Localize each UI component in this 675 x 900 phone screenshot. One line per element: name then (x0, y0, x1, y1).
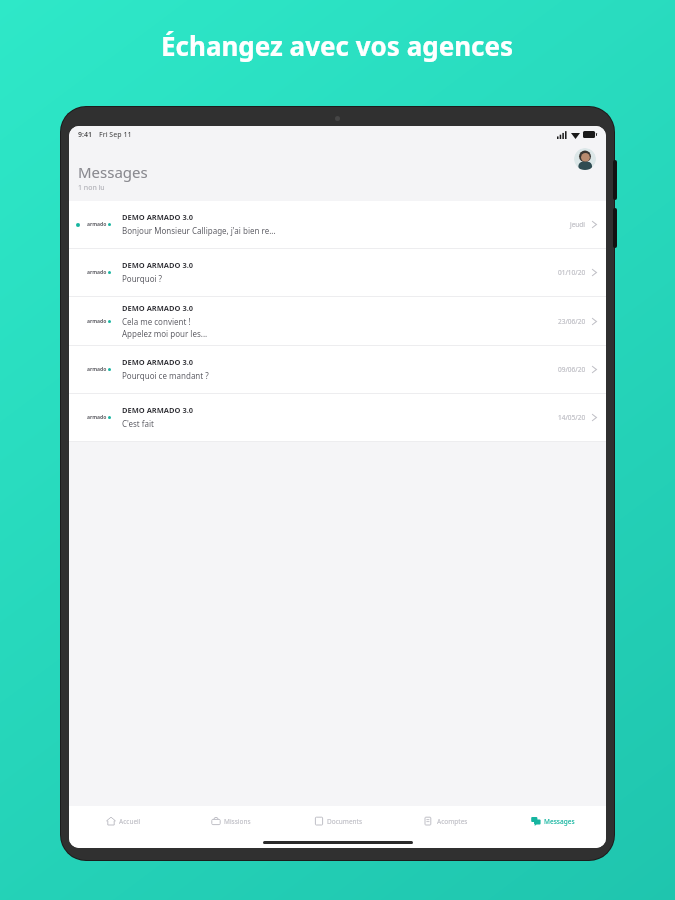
staticText: 01/10/20 (558, 268, 586, 277)
staticText: DEMO ARMADO 3.0 (122, 303, 194, 313)
staticText: Bonjour Monsieur Callipage, j'ai bien re… (122, 225, 276, 236)
staticText: Accueil (119, 817, 141, 826)
staticText: Cela me convient ! (122, 316, 191, 327)
staticText: C'est fait (122, 418, 154, 429)
staticText: 1 non lu (78, 183, 105, 193)
staticText: armado (87, 414, 107, 421)
staticText: Messages (78, 162, 148, 182)
staticText: Pourquoi ce mandant ? (122, 370, 209, 381)
button[interactable]: armado (69, 201, 606, 248)
staticText: Missions (224, 817, 251, 826)
button[interactable]: Profil (574, 148, 596, 170)
button[interactable]: armado (69, 346, 606, 393)
button[interactable]: Messages (499, 806, 606, 836)
button[interactable]: Accueil (69, 806, 177, 836)
staticText: DEMO ARMADO 3.0 (122, 260, 194, 270)
button[interactable]: Documents (285, 806, 392, 836)
button[interactable]: armado (69, 249, 606, 296)
staticText: armado (87, 269, 107, 276)
staticText: armado (87, 318, 107, 325)
button[interactable]: armado (69, 297, 606, 345)
staticText: armado (87, 366, 107, 373)
button[interactable]: armado (69, 394, 606, 441)
button[interactable]: Acomptes (392, 806, 499, 836)
staticText: 14/05/20 (558, 413, 586, 422)
staticText: Pourquoi ? (122, 273, 163, 284)
staticText: 9:41 (78, 130, 92, 140)
staticText: Appelez moi pour les... (122, 328, 208, 339)
staticText: 09/06/20 (558, 365, 586, 374)
staticText: jeudi (570, 220, 586, 229)
staticText: Messages (544, 817, 575, 826)
staticText: Échangez avec vos agences (161, 28, 514, 63)
button[interactable]: Missions (177, 806, 285, 836)
staticText: DEMO ARMADO 3.0 (122, 405, 194, 415)
staticText: armado (87, 221, 107, 228)
staticText: Acomptes (437, 817, 468, 826)
staticText: Documents (327, 817, 363, 826)
staticText: Fri Sep 11 (99, 130, 132, 140)
staticText: DEMO ARMADO 3.0 (122, 357, 194, 367)
staticText: 23/06/20 (558, 317, 586, 326)
staticText: DEMO ARMADO 3.0 (122, 212, 194, 222)
